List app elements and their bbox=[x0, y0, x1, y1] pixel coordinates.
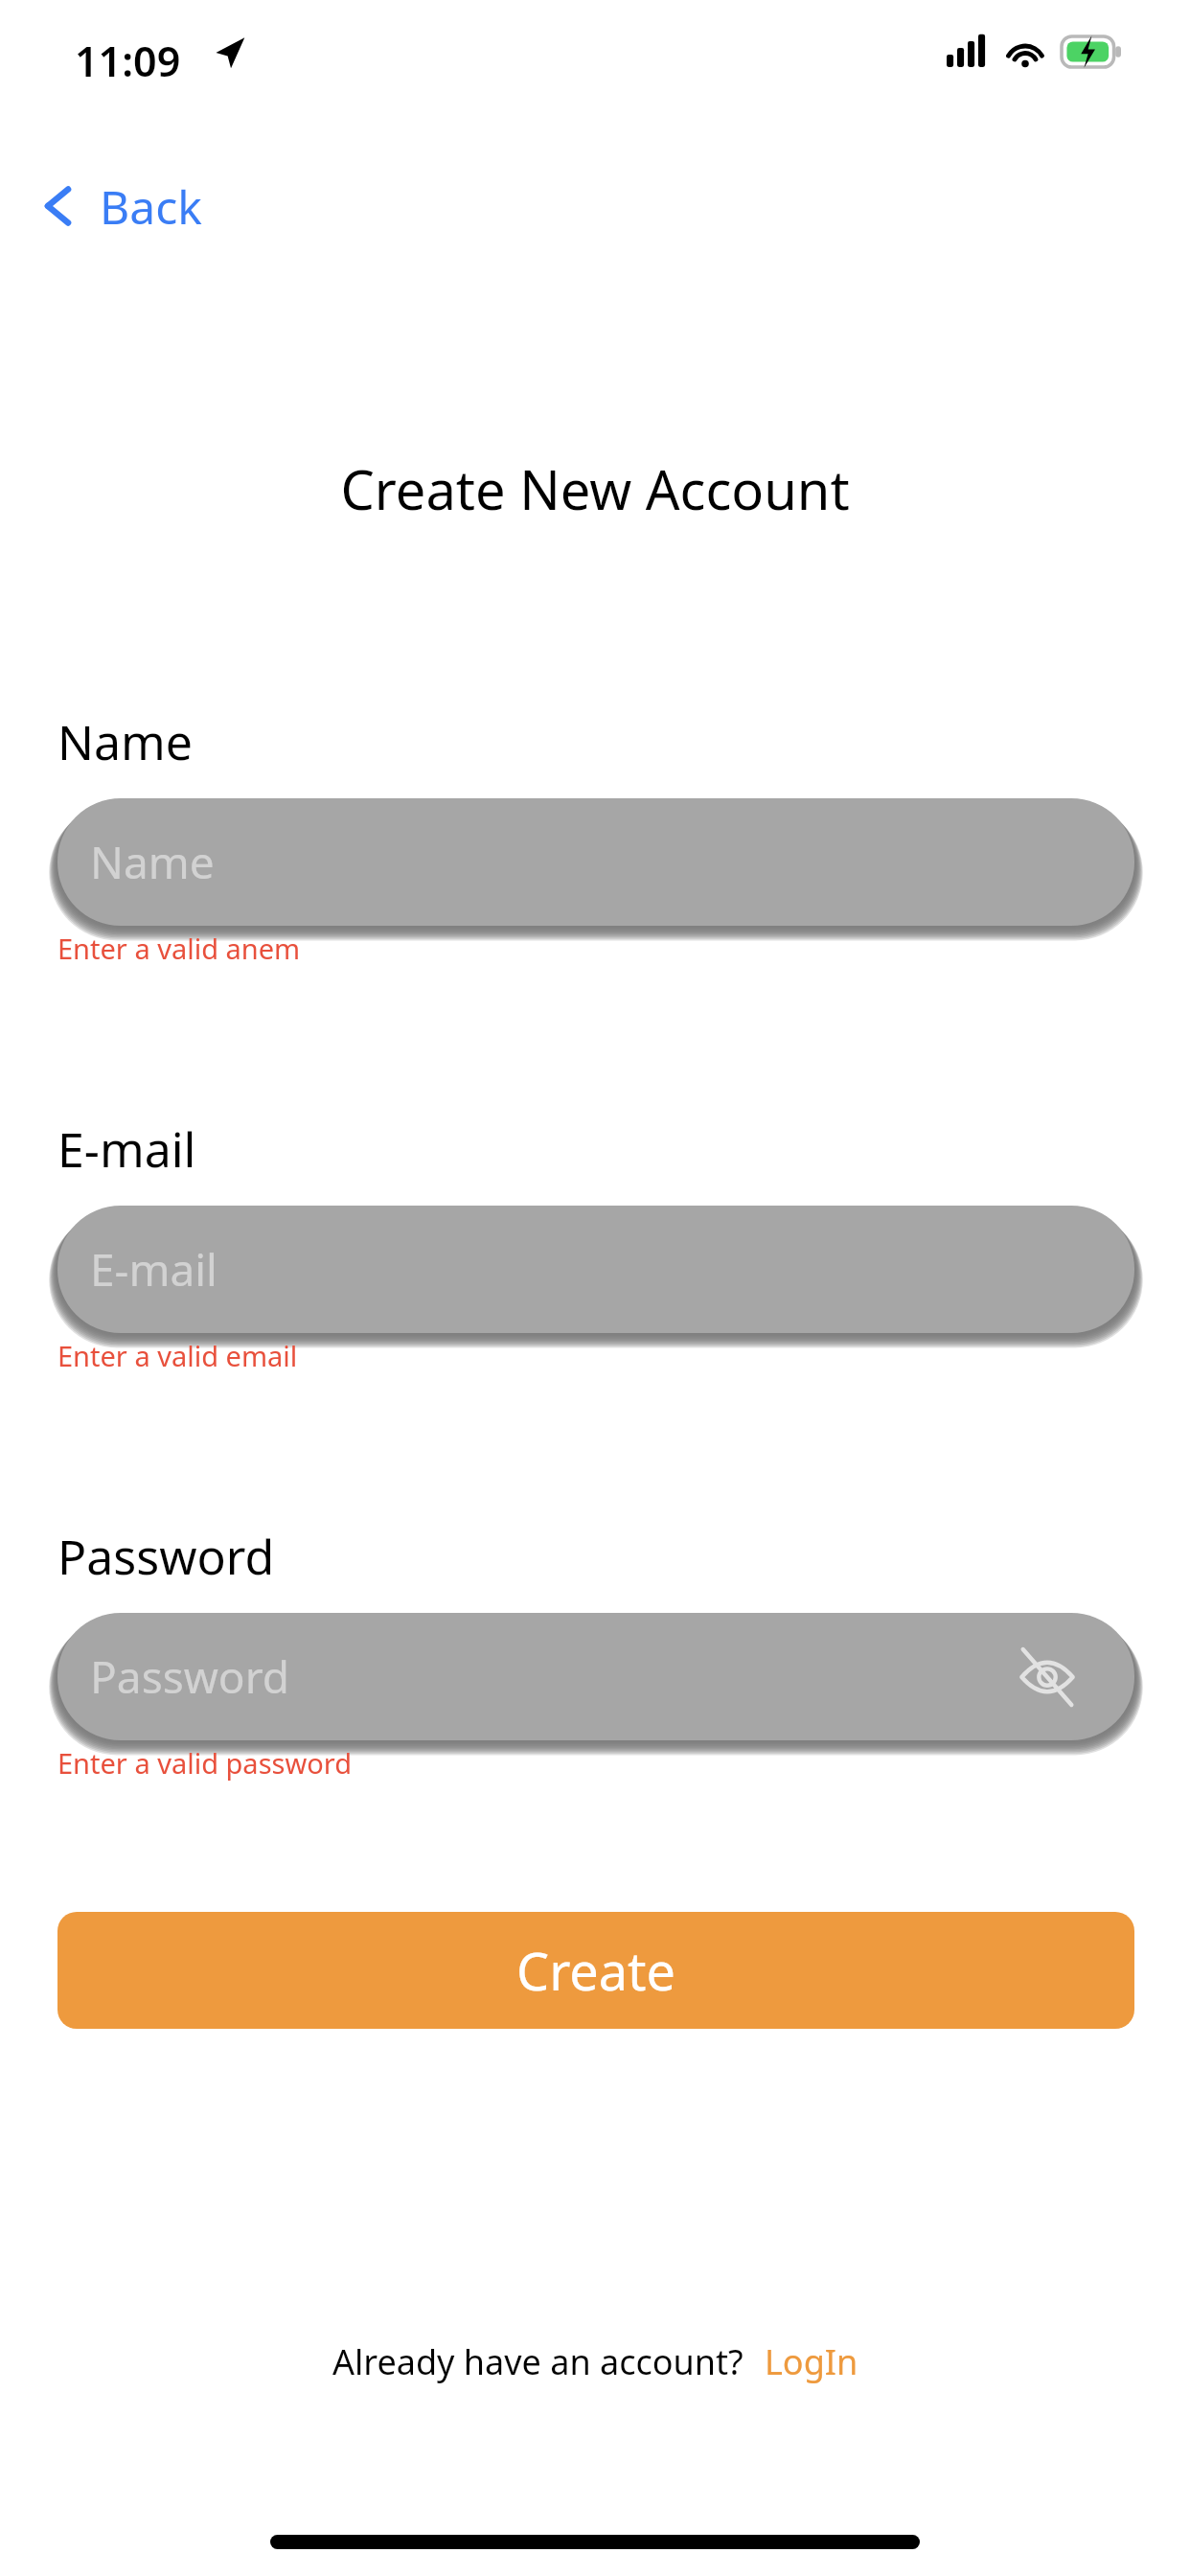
staticText: 11:09 bbox=[75, 33, 181, 89]
staticText: E-mail bbox=[57, 1116, 196, 1182]
staticText: Create bbox=[516, 1935, 676, 2006]
button[interactable]: LogIn bbox=[765, 2338, 858, 2385]
staticText: LogIn bbox=[765, 2338, 858, 2385]
staticText: Name bbox=[90, 832, 215, 892]
button[interactable]: Create bbox=[57, 1912, 1134, 2029]
staticText: E-mail bbox=[90, 1239, 217, 1299]
staticText: Back bbox=[100, 175, 202, 238]
staticText: Password bbox=[57, 1524, 275, 1589]
staticText: Name bbox=[57, 709, 193, 774]
button[interactable]: Back bbox=[29, 153, 210, 259]
staticText: Create New Account bbox=[0, 452, 1190, 525]
button[interactable]: Name bbox=[57, 798, 1134, 926]
staticText: Enter a valid anem bbox=[57, 930, 301, 967]
staticText: Enter a valid password bbox=[57, 1744, 352, 1782]
button[interactable]: Password bbox=[57, 1613, 1134, 1740]
staticText: Password bbox=[90, 1646, 290, 1707]
staticText: Enter a valid email bbox=[57, 1337, 298, 1374]
button[interactable]: E-mail bbox=[57, 1206, 1134, 1333]
button[interactable]: Show password bbox=[1014, 1644, 1081, 1711]
staticText: Already have an account? bbox=[332, 2338, 744, 2385]
